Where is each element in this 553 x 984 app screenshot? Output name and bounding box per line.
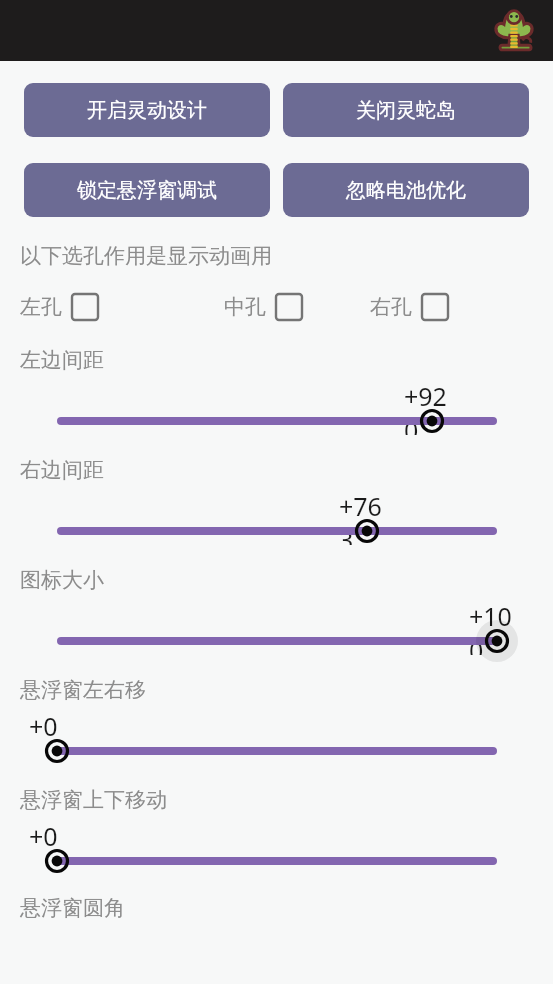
button[interactable]: 开启灵动设计: [24, 83, 270, 137]
staticText: 开启灵动设计: [87, 98, 207, 123]
staticText: 以下选孔作用是显示动画用: [20, 243, 272, 269]
button[interactable]: 灵蛇岛: [493, 10, 535, 52]
staticText: +763: [339, 489, 395, 545]
button[interactable]: 左边间距: [411, 400, 453, 442]
staticText: 悬浮窗上下移动: [20, 787, 167, 813]
button[interactable]: 锁定悬浮窗调试: [24, 163, 270, 217]
staticText: 悬浮窗圆角: [20, 895, 125, 921]
staticText: 左边间距: [20, 347, 104, 373]
staticText: 右边间距: [20, 457, 104, 483]
staticText: +920: [404, 379, 460, 435]
staticText: 中孔: [224, 294, 266, 320]
staticText: +0: [29, 819, 85, 853]
button[interactable]: 右孔: [370, 294, 448, 320]
staticText: 忽略电池优化: [346, 178, 466, 203]
button[interactable]: 关闭灵蛇岛: [283, 83, 529, 137]
button[interactable]: 悬浮窗上下移动: [36, 840, 78, 882]
staticText: 锁定悬浮窗调试: [77, 178, 217, 203]
staticText: 图标大小: [20, 567, 104, 593]
staticText: +100: [469, 599, 525, 655]
button[interactable]: 右边间距: [346, 510, 388, 552]
staticText: 左孔: [20, 294, 62, 320]
button[interactable]: 悬浮窗左右移: [36, 730, 78, 772]
button[interactable]: 中孔: [224, 294, 302, 320]
staticText: 关闭灵蛇岛: [356, 98, 456, 123]
staticText: 右孔: [370, 294, 412, 320]
staticText: +0: [29, 709, 85, 743]
button[interactable]: 左孔: [20, 294, 98, 320]
button[interactable]: 忽略电池优化: [283, 163, 529, 217]
button[interactable]: 图标大小: [476, 620, 518, 662]
staticText: 悬浮窗左右移: [20, 677, 146, 703]
